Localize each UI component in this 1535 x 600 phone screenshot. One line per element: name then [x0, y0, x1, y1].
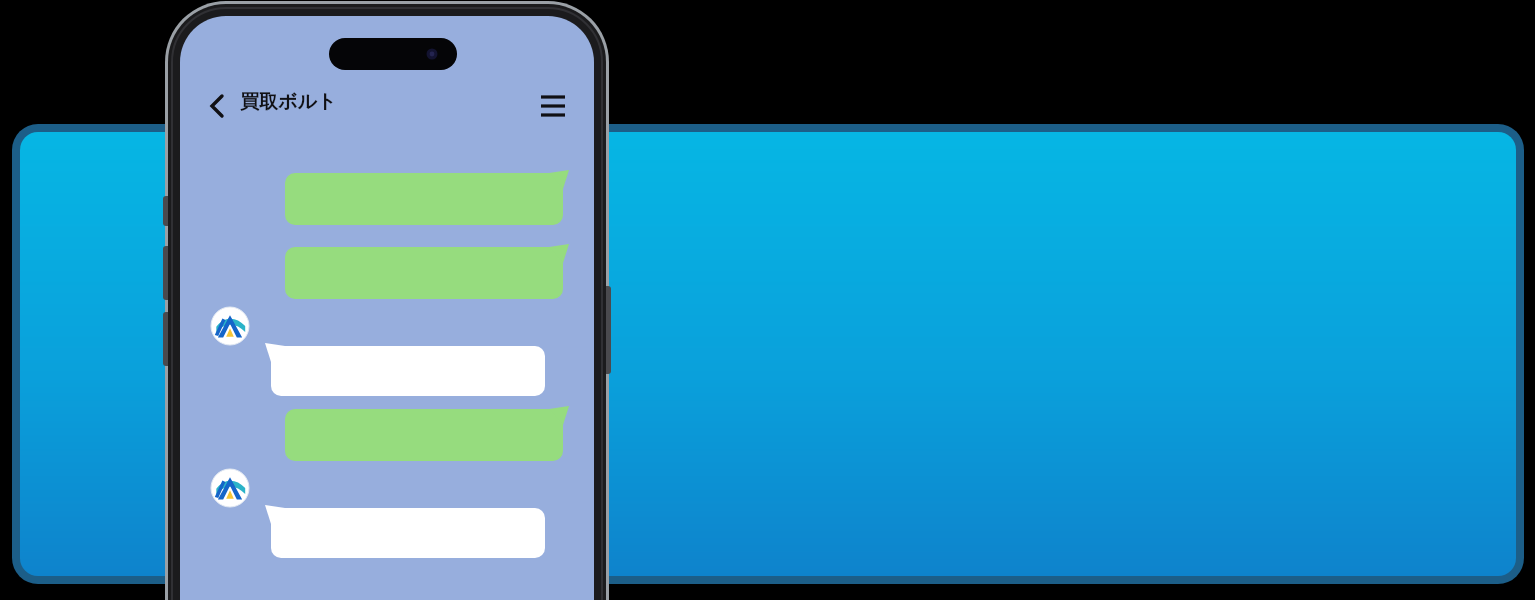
button[interactable]: [285, 246, 575, 300]
button[interactable]: [285, 172, 575, 226]
button[interactable]: Menu: [532, 84, 576, 128]
button[interactable]: Back: [194, 84, 238, 128]
button[interactable]: [210, 474, 575, 549]
button[interactable]: [285, 408, 575, 462]
button[interactable]: [210, 311, 575, 386]
staticText: 買取ボルト: [240, 90, 337, 114]
